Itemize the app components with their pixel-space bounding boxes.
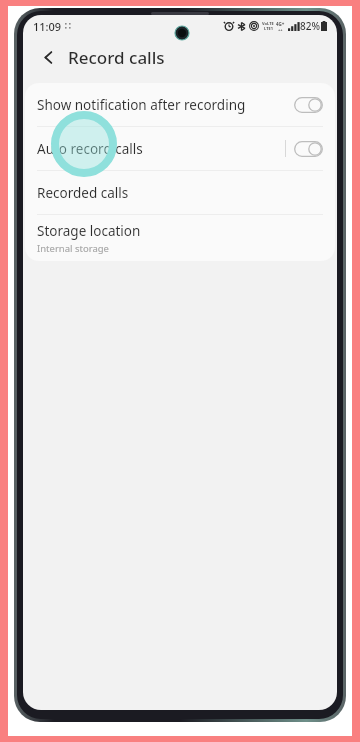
staticText: LTE1 bbox=[264, 26, 273, 31]
staticText: Record calls bbox=[68, 46, 165, 69]
button[interactable]: Toggle bbox=[294, 141, 323, 157]
button[interactable]: Show notification after recording bbox=[25, 83, 335, 126]
staticText: Auto record calls bbox=[37, 140, 285, 158]
button[interactable]: Auto record calls bbox=[25, 127, 335, 170]
button[interactable]: Storage location bbox=[25, 215, 335, 261]
staticText: Storage location bbox=[37, 222, 141, 240]
staticText: Show notification after recording bbox=[37, 96, 294, 114]
button[interactable]: Recorded calls bbox=[25, 171, 335, 214]
button[interactable]: Back bbox=[31, 40, 65, 74]
staticText: 82% bbox=[300, 19, 320, 33]
staticText: 11:09 bbox=[33, 19, 62, 34]
staticText: VoLTE bbox=[262, 21, 274, 26]
staticText: Recorded calls bbox=[37, 184, 129, 202]
button[interactable]: Toggle bbox=[294, 97, 323, 113]
staticText: 4G+ bbox=[276, 21, 285, 27]
staticText: ++ bbox=[278, 27, 283, 32]
staticText: Internal storage bbox=[37, 242, 109, 255]
